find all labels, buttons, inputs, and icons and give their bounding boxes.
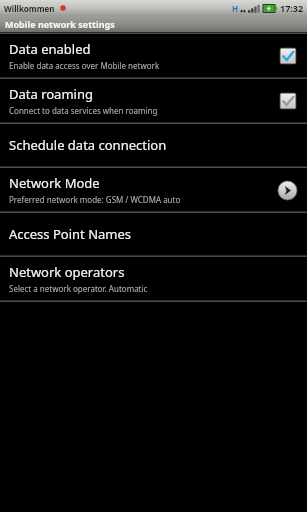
staticText: Select a network operator. Automatic bbox=[9, 283, 148, 294]
staticText: Connect to data services when roaming bbox=[9, 105, 158, 116]
button[interactable]: Data enabled bbox=[0, 34, 307, 77]
button[interactable]: Data roaming bbox=[0, 79, 307, 122]
staticText: Access Point Names bbox=[9, 225, 132, 243]
staticText: H bbox=[232, 3, 239, 14]
button[interactable]: Data roaming bbox=[277, 90, 299, 112]
staticText: Network Mode bbox=[9, 174, 100, 192]
staticText: Willkommen bbox=[4, 3, 55, 14]
staticText: 17:32 bbox=[280, 2, 304, 14]
staticText: Data roaming bbox=[9, 85, 93, 103]
button[interactable]: Network operators bbox=[0, 257, 307, 300]
button[interactable]: Data enabled bbox=[277, 45, 299, 67]
staticText: Schedule data connection bbox=[9, 136, 167, 154]
button[interactable]: Network Mode bbox=[0, 168, 307, 211]
staticText: Data enabled bbox=[9, 40, 91, 58]
staticText: Preferred network mode: GSM / WCDMA auto bbox=[9, 194, 181, 205]
staticText: Mobile network settings bbox=[5, 18, 115, 30]
button[interactable]: Access Point Names bbox=[0, 213, 307, 255]
staticText: Enable data access over Mobile network bbox=[9, 60, 160, 71]
staticText: Network operators bbox=[9, 263, 125, 281]
button[interactable]: Schedule data connection bbox=[0, 124, 307, 166]
button[interactable]: Open Network Mode bbox=[275, 178, 299, 202]
